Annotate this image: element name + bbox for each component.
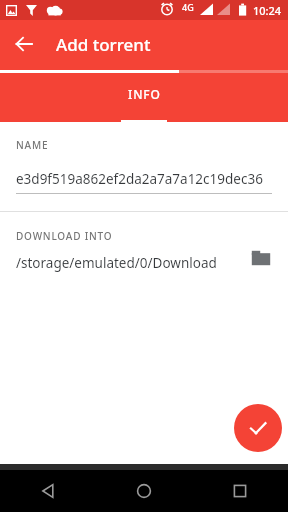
- staticText: 10:24: [253, 3, 282, 18]
- staticText: INFO: [128, 86, 161, 102]
- staticText: 4G: [182, 1, 194, 13]
- button[interactable]: Choose folder: [244, 241, 278, 275]
- staticText: NAME: [16, 138, 49, 152]
- button[interactable]: DOWNLOAD INTO: [0, 212, 288, 290]
- button[interactable]: INFO: [0, 74, 288, 122]
- staticText: Add torrent: [56, 33, 151, 56]
- button[interactable]: Home: [96, 470, 192, 512]
- staticText: e3d9f519a862ef2da2a7a7a12c19dec36: [16, 170, 263, 188]
- button[interactable]: Back: [0, 470, 96, 512]
- button[interactable]: Confirm: [234, 404, 282, 452]
- staticText: DOWNLOAD INTO: [16, 229, 113, 243]
- button[interactable]: e3d9f519a862ef2da2a7a7a12c19dec36: [16, 170, 272, 194]
- staticText: /storage/emulated/0/Download: [16, 254, 217, 272]
- button[interactable]: Recent apps: [192, 470, 288, 512]
- button[interactable]: Navigate up: [6, 26, 42, 62]
